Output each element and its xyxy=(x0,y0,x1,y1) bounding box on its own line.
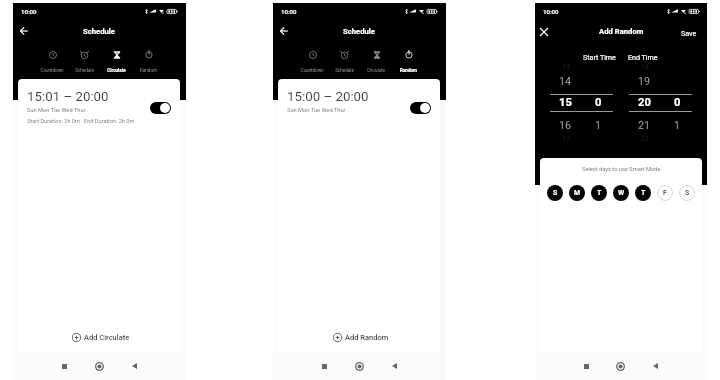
staticText: Add Random xyxy=(599,27,644,36)
staticText: T xyxy=(597,189,602,197)
staticText: 0 xyxy=(674,96,681,109)
staticText: 13 xyxy=(562,63,570,71)
button[interactable]: Schedule xyxy=(68,50,100,73)
staticText: Add Circulate xyxy=(84,333,130,342)
button[interactable]: Enable schedule xyxy=(150,102,171,114)
staticText: End Time xyxy=(628,53,658,61)
staticText: S xyxy=(685,189,690,197)
staticText: Sun Mon Tue Wed Thur xyxy=(27,107,86,114)
staticText: Countdown xyxy=(40,68,64,73)
staticText: 22 xyxy=(641,135,649,143)
staticText: Start Duration: 2h 0m End Duration: 2h 0… xyxy=(27,118,135,125)
staticText: F xyxy=(663,189,667,197)
button[interactable]: Random xyxy=(132,50,164,73)
staticText: Circulate xyxy=(367,68,385,73)
staticText: Circulate xyxy=(107,68,126,73)
button[interactable]: Back xyxy=(387,359,401,373)
button[interactable]: S xyxy=(679,185,695,201)
staticText: S xyxy=(553,189,558,197)
button[interactable]: Home xyxy=(92,359,106,373)
staticText: 21 xyxy=(638,119,651,132)
staticText: Save xyxy=(681,29,697,37)
button[interactable]: Countdown xyxy=(296,50,328,73)
staticText: 19 xyxy=(638,75,651,88)
button[interactable]: S xyxy=(547,185,563,201)
staticText: 10:00 xyxy=(21,8,37,15)
staticText: Countdown xyxy=(300,68,324,73)
staticText: Schedule xyxy=(343,27,376,36)
staticText: Sun Mon Tue Wed Thur xyxy=(287,107,346,114)
staticText: 17 xyxy=(562,135,570,143)
staticText: Schedule xyxy=(83,27,116,36)
staticText: 14 xyxy=(559,75,572,88)
staticText: Random xyxy=(140,68,157,73)
staticText: T xyxy=(641,189,646,197)
button[interactable]: W xyxy=(613,185,629,201)
staticText: Random xyxy=(400,68,417,73)
button[interactable]: Countdown xyxy=(36,50,68,73)
staticText: M xyxy=(574,189,581,197)
staticText: Select days to use Smart Mode xyxy=(582,166,661,173)
staticText: Schedule xyxy=(75,68,94,73)
staticText: 10:00 xyxy=(281,8,297,15)
staticText: 1 xyxy=(674,119,681,132)
button[interactable]: Back xyxy=(127,359,141,373)
button[interactable]: M xyxy=(569,185,585,201)
staticText: Start Time xyxy=(583,53,616,61)
staticText: 15:01 – 20:00 xyxy=(27,89,109,105)
staticText: 20 xyxy=(638,96,651,109)
staticText: W xyxy=(618,189,625,197)
button[interactable]: Home xyxy=(352,359,366,373)
button[interactable]: Random xyxy=(392,50,424,73)
button[interactable]: Recents xyxy=(57,359,71,373)
staticText: 18 xyxy=(641,63,649,71)
button[interactable]: Add Random xyxy=(280,328,440,347)
staticText: 15:00 – 20:00 xyxy=(287,89,369,105)
button[interactable]: Circulate xyxy=(100,50,132,73)
button[interactable]: T xyxy=(635,185,651,201)
button[interactable]: Enable schedule xyxy=(410,102,431,114)
button[interactable]: Home xyxy=(613,359,627,373)
button[interactable]: Schedule xyxy=(328,50,360,73)
button[interactable]: Save xyxy=(676,24,707,42)
staticText: 10:00 xyxy=(543,8,559,15)
button[interactable]: Close xyxy=(535,23,552,40)
button[interactable]: F xyxy=(657,185,673,201)
staticText: Add Random xyxy=(345,333,389,342)
button[interactable]: Back xyxy=(275,22,292,39)
staticText: 15 xyxy=(559,96,572,109)
button[interactable]: Recents xyxy=(579,359,593,373)
staticText: 16 xyxy=(559,119,572,132)
staticText: Schedule xyxy=(335,68,354,73)
button[interactable]: Add Circulate xyxy=(20,328,180,347)
button[interactable]: Back xyxy=(648,359,662,373)
button[interactable]: Back xyxy=(15,22,32,39)
staticText: 0 xyxy=(595,96,602,109)
button[interactable]: Recents xyxy=(317,359,331,373)
button[interactable]: T xyxy=(591,185,607,201)
button[interactable]: Circulate xyxy=(360,50,392,73)
staticText: 1 xyxy=(595,119,602,132)
